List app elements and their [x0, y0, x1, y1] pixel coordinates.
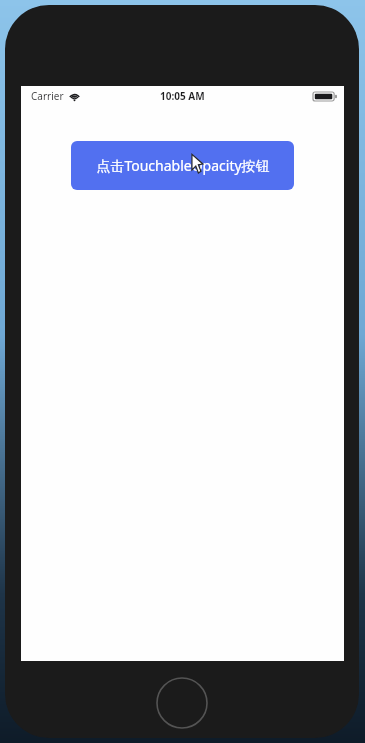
staticText: 点击TouchableOpacity按钮 — [96, 156, 270, 175]
button[interactable]: 点击TouchableOpacity按钮 — [71, 141, 294, 190]
staticText: 10:05 AM — [160, 89, 205, 103]
button[interactable]: Home — [156, 677, 208, 729]
staticText: Carrier — [31, 89, 64, 103]
